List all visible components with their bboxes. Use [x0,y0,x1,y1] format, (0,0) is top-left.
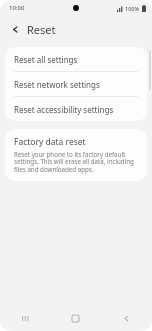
button[interactable]: Reset network settings [5,72,147,96]
button[interactable]: Factory data reset [5,129,147,181]
staticText: Reset all settings [14,54,78,65]
staticText: Reset your phone to its factory default … [14,150,138,174]
button[interactable]: Recent apps [0,305,50,331]
button[interactable]: Reset accessibility settings [5,97,147,121]
staticText: Reset [27,22,56,37]
staticText: Reset accessibility settings [14,104,114,115]
staticText: Reset network settings [14,79,100,90]
button[interactable]: Back [101,305,152,331]
staticText: Factory data reset [14,136,86,148]
staticText: 100% [125,5,140,12]
button[interactable]: Home [50,305,101,331]
staticText: 10:00 [9,4,25,12]
button[interactable]: Reset all settings [5,47,147,71]
button[interactable]: Back [7,21,23,37]
